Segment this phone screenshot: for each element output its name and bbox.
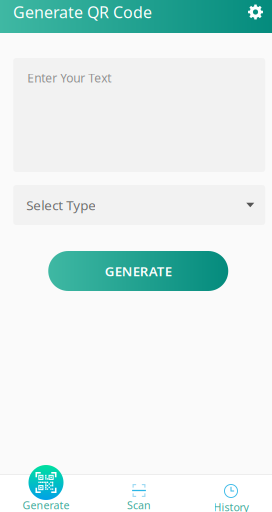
staticText: GENERATE (105, 262, 172, 280)
staticText: Select Type (26, 196, 96, 214)
staticText: Generate (22, 498, 69, 512)
button[interactable]: GENERATE (48, 251, 228, 291)
button[interactable]: Select Type (13, 185, 265, 225)
staticText: History (213, 500, 248, 512)
button[interactable]: History (186, 484, 272, 512)
button[interactable]: Scan (94, 483, 184, 512)
staticText: Enter Your Text (27, 70, 111, 86)
staticText: Scan (127, 498, 151, 512)
button[interactable]: Generate (1, 465, 91, 512)
button[interactable]: Settings (244, 0, 267, 23)
staticText: Generate QR Code (13, 1, 152, 23)
